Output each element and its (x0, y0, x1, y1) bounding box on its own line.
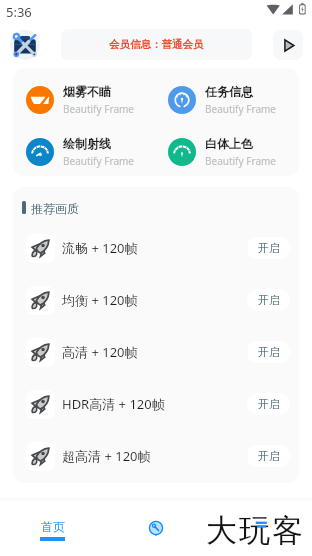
staticText: 高清 + 120帧 (62, 343, 138, 361)
staticText: 烟雾不瞄 (63, 84, 111, 99)
button[interactable]: Tools (142, 514, 170, 542)
button[interactable]: 均衡 + 120帧 (13, 274, 299, 326)
button[interactable]: 流畅 + 120帧 (13, 222, 299, 274)
staticText: 5:36 (6, 3, 32, 21)
button[interactable]: 开启 (247, 237, 290, 259)
staticText: 客 (272, 511, 305, 550)
staticText: Beautify Frame (205, 102, 276, 116)
staticText: 均衡 + 120帧 (62, 291, 138, 309)
button[interactable]: 开启 (247, 289, 290, 311)
staticText: 流畅 + 120帧 (62, 239, 138, 257)
button[interactable]: 高清 + 120帧 (13, 326, 299, 378)
button[interactable]: 开启 (247, 393, 290, 415)
staticText: 推荐画质 (31, 201, 79, 216)
button[interactable]: 绘制射线 (26, 136, 160, 168)
staticText: Beautify Frame (205, 154, 276, 168)
staticText: 首页 (41, 519, 65, 534)
staticText: 绘制射线 (63, 136, 111, 151)
staticText: 开启 (258, 397, 280, 411)
button[interactable]: 白体上色 (168, 136, 299, 168)
staticText: Beautify Frame (63, 154, 134, 168)
button[interactable]: HDR高清 + 120帧 (13, 378, 299, 430)
staticText: Beautify Frame (63, 102, 134, 116)
staticText: 开启 (258, 449, 280, 463)
staticText: 开启 (258, 293, 280, 307)
button[interactable]: 烟雾不瞄 (26, 84, 160, 116)
staticText: 玩 (239, 511, 272, 550)
button[interactable]: 会员信息：普通会员 (61, 29, 252, 60)
staticText: 开启 (258, 241, 280, 255)
staticText: 白体上色 (205, 136, 253, 151)
button[interactable]: 开启 (247, 341, 290, 363)
staticText: HDR高清 + 120帧 (62, 395, 165, 413)
staticText: 任务信息 (205, 84, 253, 99)
button[interactable]: 首页 (30, 515, 75, 548)
button[interactable]: 超高清 + 120帧 (13, 430, 299, 482)
staticText: 开启 (258, 345, 280, 359)
button[interactable]: 任务信息 (168, 84, 299, 116)
button[interactable]: 开启 (247, 445, 290, 467)
button[interactable]: Tools (9, 29, 40, 60)
staticText: 超高清 + 120帧 (62, 447, 151, 465)
button[interactable]: Play (273, 30, 303, 60)
staticText: 大 (206, 511, 239, 550)
staticText: 会员信息：普通会员 (109, 38, 204, 51)
